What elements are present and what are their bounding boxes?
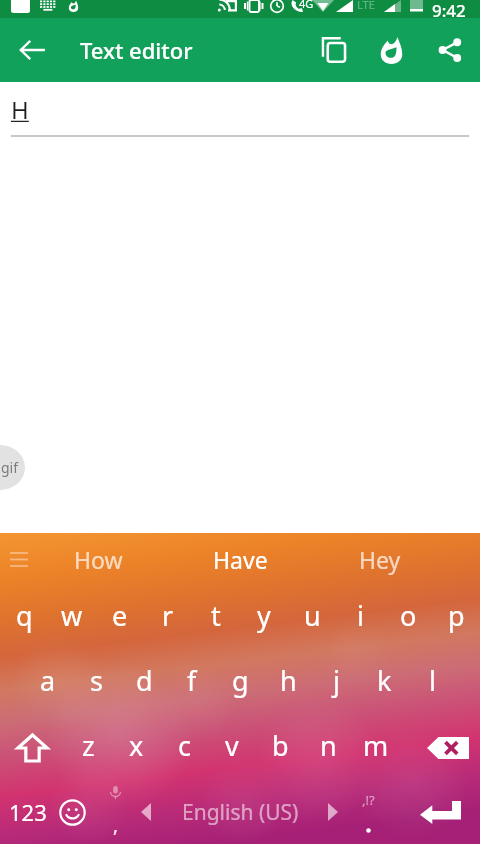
button[interactable]: h bbox=[264, 650, 312, 715]
staticText: , bbox=[113, 812, 119, 838]
button[interactable]: Enter bbox=[400, 780, 480, 844]
button[interactable]: Comma bbox=[98, 780, 132, 844]
button[interactable]: Share bbox=[420, 18, 480, 82]
button[interactable]: p bbox=[432, 585, 480, 650]
button[interactable]: o bbox=[384, 585, 432, 650]
staticText: gif bbox=[1, 458, 19, 477]
button[interactable]: f bbox=[168, 650, 216, 715]
button[interactable]: Clear text bbox=[362, 18, 420, 82]
button[interactable]: Backspace bbox=[400, 715, 480, 780]
staticText: u bbox=[304, 597, 321, 634]
button[interactable]: u bbox=[288, 585, 336, 650]
staticText: s bbox=[90, 662, 103, 699]
staticText: f bbox=[187, 662, 197, 699]
staticText: Text editor bbox=[80, 35, 193, 65]
staticText: English (US) bbox=[182, 798, 299, 827]
staticText: g bbox=[232, 662, 249, 699]
button[interactable]: Period bbox=[346, 780, 390, 844]
staticText: q bbox=[16, 597, 33, 634]
button[interactable]: b bbox=[256, 715, 304, 780]
button[interactable]: Next bbox=[320, 780, 346, 844]
staticText: v bbox=[225, 727, 239, 764]
staticText: 123 bbox=[9, 797, 47, 827]
button[interactable]: k bbox=[360, 650, 408, 715]
staticText: h bbox=[280, 662, 297, 699]
staticText: l bbox=[429, 662, 436, 699]
staticText: a bbox=[40, 662, 56, 699]
button[interactable]: r bbox=[144, 585, 192, 650]
button[interactable]: y bbox=[240, 585, 288, 650]
button[interactable]: s bbox=[72, 650, 120, 715]
button[interactable]: Have bbox=[158, 533, 322, 585]
button[interactable]: q bbox=[0, 585, 48, 650]
staticText: b bbox=[272, 727, 289, 764]
button[interactable]: l bbox=[408, 650, 456, 715]
button[interactable]: How bbox=[38, 533, 158, 585]
staticText: c bbox=[178, 727, 191, 764]
staticText: p bbox=[448, 597, 465, 634]
staticText: LTE bbox=[357, 0, 375, 12]
button[interactable]: w bbox=[48, 585, 96, 650]
button[interactable]: Emoji bbox=[46, 780, 98, 844]
button[interactable]: m bbox=[352, 715, 400, 780]
staticText: w bbox=[61, 597, 83, 634]
button[interactable]: c bbox=[160, 715, 208, 780]
staticText: r bbox=[162, 597, 174, 634]
button[interactable]: Hey bbox=[322, 533, 438, 585]
button[interactable]: z bbox=[64, 715, 112, 780]
staticText: y bbox=[257, 597, 271, 634]
button[interactable]: i bbox=[336, 585, 384, 650]
staticText: o bbox=[400, 597, 417, 634]
staticText: d bbox=[136, 662, 153, 699]
staticText: Hey bbox=[359, 544, 401, 575]
staticText: m bbox=[363, 727, 389, 764]
button[interactable]: Previous bbox=[132, 780, 160, 844]
button[interactable]: j bbox=[312, 650, 360, 715]
button[interactable]: Shift bbox=[0, 715, 64, 780]
staticText: H bbox=[11, 93, 29, 126]
button[interactable]: v bbox=[208, 715, 256, 780]
button[interactable]: Copy bbox=[306, 18, 362, 82]
staticText: n bbox=[320, 727, 337, 764]
button[interactable]: x bbox=[112, 715, 160, 780]
staticText: Have bbox=[213, 544, 268, 575]
staticText: How bbox=[74, 544, 123, 575]
staticText: i bbox=[357, 597, 364, 634]
button[interactable]: t bbox=[192, 585, 240, 650]
staticText: e bbox=[112, 597, 128, 634]
button[interactable]: Back bbox=[0, 18, 64, 82]
staticText: 4G bbox=[299, 0, 314, 11]
staticText: t bbox=[211, 597, 221, 634]
button[interactable]: a bbox=[24, 650, 72, 715]
button[interactable]: n bbox=[304, 715, 352, 780]
button[interactable]: 123 bbox=[0, 780, 56, 844]
button[interactable]: g bbox=[216, 650, 264, 715]
staticText: z bbox=[82, 727, 95, 764]
staticText: ,!? bbox=[362, 791, 375, 809]
staticText: j bbox=[333, 662, 340, 699]
button[interactable]: Keyboard menu bbox=[0, 533, 38, 585]
staticText: x bbox=[129, 727, 144, 764]
button[interactable]: English (US) bbox=[160, 780, 320, 844]
button[interactable]: e bbox=[96, 585, 144, 650]
button[interactable]: GIF bbox=[0, 445, 25, 490]
staticText: 9:42 bbox=[432, 0, 466, 17]
button[interactable]: d bbox=[120, 650, 168, 715]
staticText: k bbox=[377, 662, 392, 699]
